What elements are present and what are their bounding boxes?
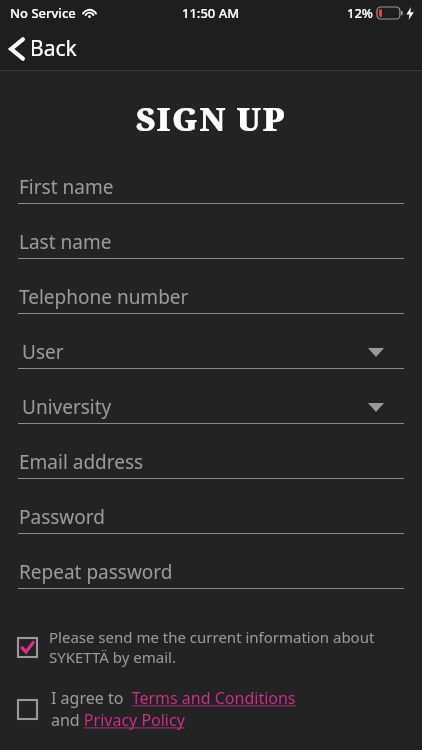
staticText: Last name — [19, 229, 112, 255]
staticText: Telephone number — [19, 284, 189, 310]
button[interactable]: First name — [0, 171, 422, 226]
staticText: User — [22, 339, 64, 365]
button[interactable]: Telephone number — [0, 281, 422, 336]
button[interactable]: University — [0, 391, 422, 446]
staticText: 11:50 AM — [182, 4, 240, 22]
staticText: Please send me the current information a… — [49, 627, 404, 667]
staticText: Back — [30, 34, 77, 63]
button[interactable]: Please send me the current information a… — [0, 627, 422, 667]
staticText: Password — [19, 504, 105, 530]
staticText: Email address — [19, 449, 144, 475]
button[interactable]: Password — [0, 501, 422, 556]
button[interactable]: I agree to Terms and Conditions and Priv… — [0, 687, 422, 731]
button[interactable]: Back — [0, 28, 91, 69]
button[interactable]: User — [0, 336, 422, 391]
button[interactable]: Email address — [0, 446, 422, 501]
staticText: 12% — [347, 4, 373, 22]
button[interactable]: Last name — [0, 226, 422, 281]
staticText: First name — [19, 174, 114, 200]
staticText: I agree to Terms and Conditions and Priv… — [51, 687, 296, 731]
button[interactable]: Repeat password — [0, 556, 422, 611]
staticText: SIGN UP — [136, 97, 286, 141]
staticText: Repeat password — [19, 559, 173, 585]
staticText: University — [22, 394, 112, 420]
staticText: No Service — [10, 4, 76, 22]
